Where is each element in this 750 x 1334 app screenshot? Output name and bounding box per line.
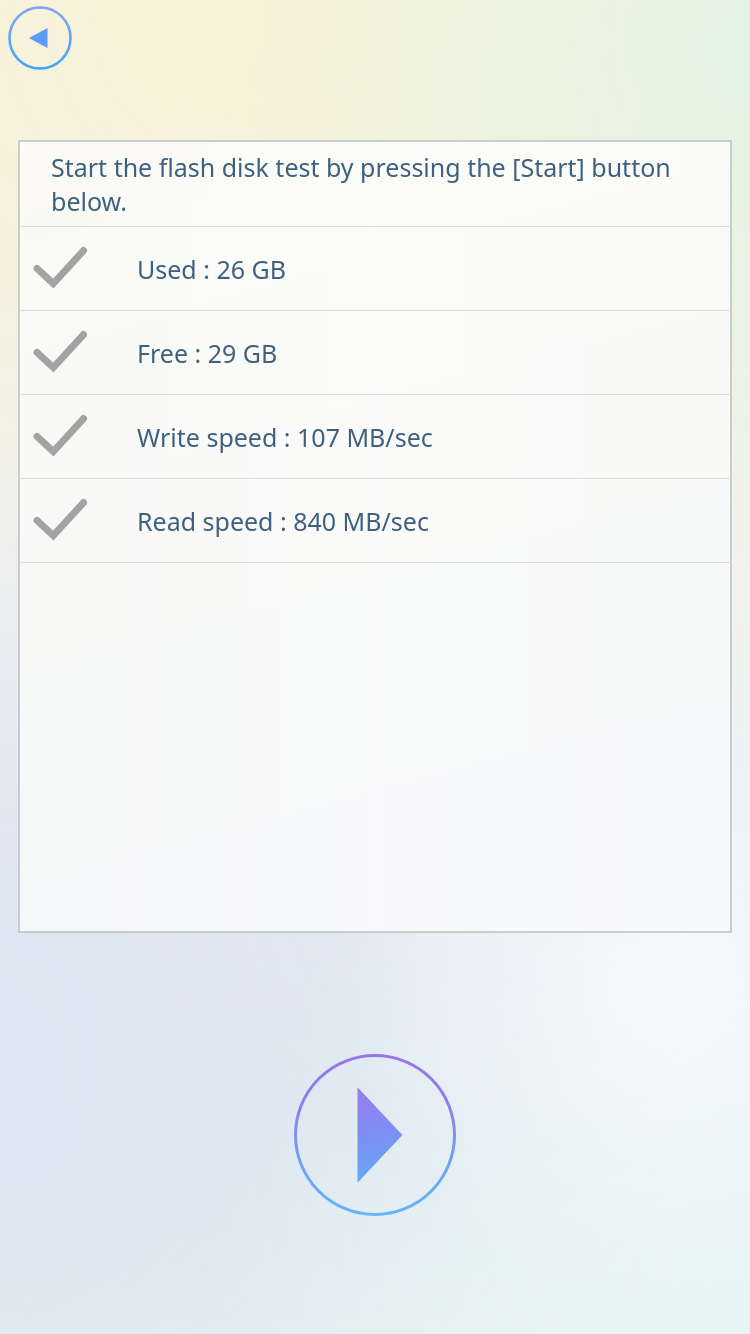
staticText: Start the flash disk test by pressing th…: [51, 150, 715, 218]
button[interactable]: Back: [8, 6, 72, 70]
button[interactable]: Used : 26 GB: [19, 227, 731, 310]
button[interactable]: Write speed : 107 MB/sec: [19, 395, 731, 478]
button[interactable]: Start test: [293, 1053, 457, 1217]
button[interactable]: Free : 29 GB: [19, 311, 731, 394]
staticText: Write speed : 107 MB/sec: [137, 420, 433, 454]
button[interactable]: Read speed : 840 MB/sec: [19, 479, 731, 562]
staticText: Used : 26 GB: [137, 252, 286, 286]
staticText: Read speed : 840 MB/sec: [137, 504, 429, 538]
staticText: Free : 29 GB: [137, 336, 278, 370]
